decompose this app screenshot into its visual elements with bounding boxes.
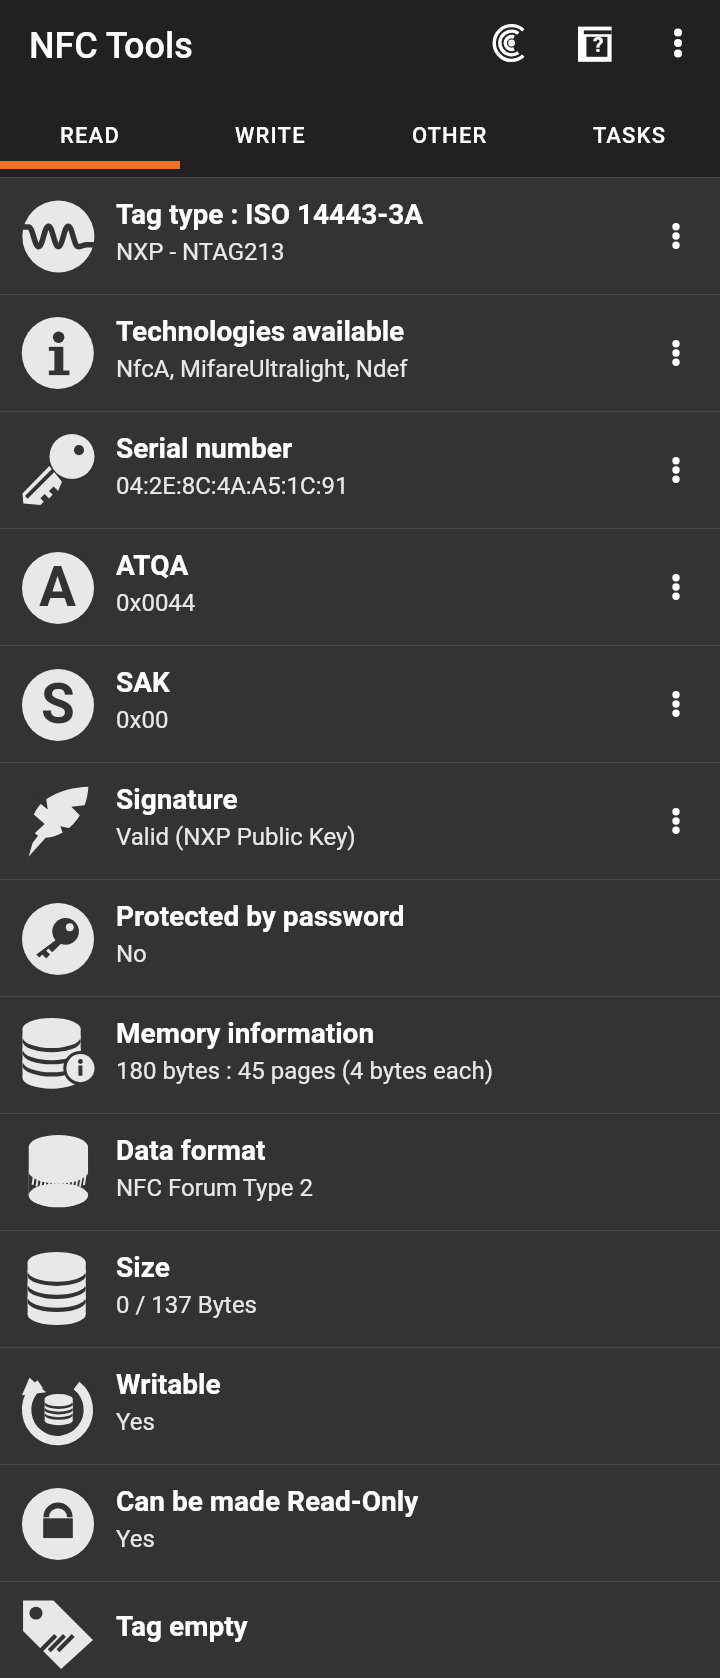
button[interactable]: NFC scan <box>473 7 545 79</box>
staticText: Memory information <box>116 1017 375 1050</box>
staticText: READ <box>60 123 120 149</box>
staticText: Data format <box>116 1134 266 1167</box>
staticText: Protected by password <box>116 900 405 933</box>
staticText: NFC Tools <box>29 25 193 67</box>
staticText: No <box>116 940 147 968</box>
staticText: Tag type : ISO 14443-3A <box>116 198 424 231</box>
staticText: 0 / 137 Bytes <box>116 1291 257 1319</box>
staticText: Serial number <box>116 432 293 465</box>
button[interactable]: More options <box>640 200 712 272</box>
button[interactable]: WRITE <box>180 95 360 169</box>
staticText: WRITE <box>235 123 306 149</box>
button[interactable]: More options <box>640 785 712 857</box>
button[interactable]: Writable <box>0 1348 720 1464</box>
button[interactable]: Serial number <box>0 412 720 528</box>
staticText: NFC Forum Type 2 <box>116 1174 314 1202</box>
staticText: NfcA, MifareUltralight, Ndef <box>116 355 408 383</box>
button[interactable]: Memory information <box>0 997 720 1113</box>
button[interactable]: Size <box>0 1231 720 1347</box>
button[interactable]: Protected by password <box>0 880 720 996</box>
staticText: Yes <box>116 1408 155 1436</box>
staticText: 180 bytes : 45 pages (4 bytes each) <box>116 1057 494 1085</box>
button[interactable]: More options <box>642 7 714 79</box>
staticText: 0x0044 <box>116 589 196 617</box>
staticText: TASKS <box>593 123 667 149</box>
button[interactable]: OTHER <box>360 95 540 169</box>
button[interactable]: More options <box>640 551 712 623</box>
button[interactable]: Data format <box>0 1114 720 1230</box>
staticText: Size <box>116 1251 170 1284</box>
button[interactable]: Can be made Read-Only <box>0 1465 720 1581</box>
staticText: Signature <box>116 783 238 816</box>
staticText: SAK <box>116 666 170 699</box>
button[interactable]: Help <box>558 7 630 79</box>
staticText: Technologies available <box>116 315 405 348</box>
button[interactable]: A <box>0 529 720 645</box>
staticText: Tag empty <box>116 1610 248 1643</box>
staticText: A <box>39 555 77 619</box>
button[interactable]: S <box>0 646 720 762</box>
staticText: Yes <box>116 1525 155 1553</box>
button[interactable]: Signature <box>0 763 720 879</box>
staticText: Writable <box>116 1368 221 1401</box>
staticText: S <box>41 672 75 736</box>
button[interactable]: TASKS <box>540 95 720 169</box>
button[interactable]: More options <box>640 668 712 740</box>
button[interactable]: Tag type : ISO 14443-3A <box>0 178 720 294</box>
staticText: ATQA <box>116 549 189 582</box>
staticText: Can be made Read-Only <box>116 1485 419 1518</box>
button[interactable]: Technologies available <box>0 295 720 411</box>
button[interactable]: More options <box>640 434 712 506</box>
button[interactable]: READ <box>0 95 180 169</box>
staticText: 0x00 <box>116 706 169 734</box>
staticText: ? <box>593 33 604 58</box>
button[interactable]: More options <box>640 317 712 389</box>
button[interactable]: Tag empty <box>0 1582 720 1678</box>
staticText: Valid (NXP Public Key) <box>116 823 356 851</box>
staticText: 04:2E:8C:4A:A5:1C:91 <box>116 472 349 500</box>
staticText: OTHER <box>412 123 488 149</box>
staticText: NXP - NTAG213 <box>116 238 285 266</box>
